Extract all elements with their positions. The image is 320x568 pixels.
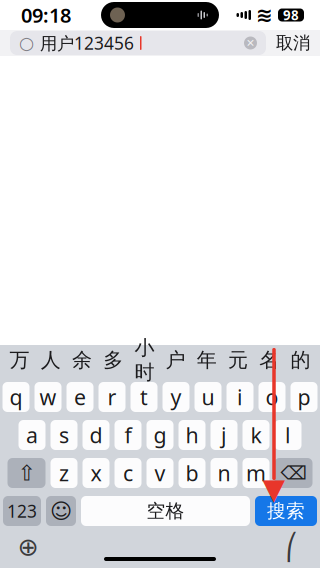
button[interactable]: r xyxy=(98,382,125,412)
staticText: 取消 xyxy=(276,32,310,54)
button[interactable]: 搜索 xyxy=(255,496,317,526)
button[interactable]: a xyxy=(18,420,45,450)
button[interactable]: 空格 xyxy=(81,496,250,526)
button[interactable]: m xyxy=(242,458,269,488)
button[interactable]: 小时 xyxy=(129,345,160,375)
staticText: b xyxy=(185,459,198,487)
staticText: v xyxy=(154,459,165,487)
button[interactable]: v xyxy=(146,458,173,488)
button[interactable]: d xyxy=(82,420,109,450)
staticText: l xyxy=(285,421,291,449)
staticText: k xyxy=(250,421,261,449)
staticText: ⎛ xyxy=(285,533,298,561)
button[interactable]: 的 xyxy=(285,345,316,375)
button[interactable]: Emoji xyxy=(46,496,76,526)
staticText: 名 xyxy=(259,348,279,372)
button[interactable]: k xyxy=(242,420,269,450)
button[interactable]: t xyxy=(130,382,157,412)
staticText: a xyxy=(26,421,38,449)
staticText: t xyxy=(140,383,148,411)
staticText: 09:18 xyxy=(21,2,71,28)
button[interactable]: 万 xyxy=(4,345,35,375)
button[interactable]: y xyxy=(162,382,189,412)
staticText: g xyxy=(153,421,166,449)
button[interactable]: s xyxy=(50,420,77,450)
button[interactable]: l xyxy=(274,420,301,450)
staticText: 万 xyxy=(10,348,30,372)
staticText: ⇧ xyxy=(17,461,35,485)
button[interactable]: x xyxy=(82,458,109,488)
staticText: e xyxy=(74,383,86,411)
staticText: y xyxy=(170,383,181,411)
button[interactable]: p xyxy=(290,382,317,412)
staticText: n xyxy=(217,459,230,487)
button[interactable]: ○ xyxy=(10,31,266,55)
staticText: 户 xyxy=(166,348,186,372)
staticText: ☺ xyxy=(50,499,72,523)
button[interactable]: 余 xyxy=(66,345,98,375)
button[interactable]: 名 xyxy=(254,345,285,375)
staticText: i xyxy=(237,383,243,411)
staticText: c xyxy=(123,459,133,487)
staticText: p xyxy=(297,383,310,411)
button[interactable]: g xyxy=(146,420,173,450)
staticText: ○ xyxy=(19,33,34,53)
staticText: 搜索 xyxy=(267,499,305,522)
button[interactable]: 人 xyxy=(35,345,66,375)
staticText: 人 xyxy=(41,348,61,372)
staticText: 123 xyxy=(7,499,37,522)
button[interactable]: 元 xyxy=(222,345,254,375)
staticText: u xyxy=(201,383,214,411)
staticText: ▼ xyxy=(262,472,285,506)
staticText: 多 xyxy=(103,348,123,372)
staticText: 余 xyxy=(72,348,92,372)
button[interactable]: i xyxy=(226,382,253,412)
staticText: s xyxy=(59,421,69,449)
button[interactable]: Shift xyxy=(7,458,45,488)
staticText: ⌫ xyxy=(280,462,306,484)
staticText: h xyxy=(185,421,198,449)
staticText: 年 xyxy=(197,348,217,372)
staticText: z xyxy=(59,459,69,487)
button[interactable]: c xyxy=(114,458,141,488)
staticText: ≋ xyxy=(256,4,273,26)
staticText: o xyxy=(265,383,278,411)
button[interactable]: 多 xyxy=(98,345,129,375)
button[interactable]: j xyxy=(210,420,237,450)
staticText: 小时 xyxy=(134,335,154,384)
staticText: 的 xyxy=(290,348,310,372)
button[interactable]: 取消 xyxy=(276,28,310,58)
button[interactable]: Delete xyxy=(274,458,312,488)
staticText: x xyxy=(90,459,101,487)
button[interactable]: n xyxy=(210,458,237,488)
button[interactable]: u xyxy=(194,382,221,412)
staticText: 98 xyxy=(283,6,299,24)
staticText: ✕ xyxy=(246,37,255,49)
staticText: q xyxy=(9,383,22,411)
button[interactable]: Dictation xyxy=(270,529,314,565)
staticText: m xyxy=(246,459,266,487)
staticText: d xyxy=(89,421,102,449)
button[interactable]: e xyxy=(66,382,93,412)
button[interactable]: z xyxy=(50,458,77,488)
button[interactable]: b xyxy=(178,458,205,488)
button[interactable]: w xyxy=(34,382,61,412)
staticText: 用户123456 xyxy=(40,31,134,54)
staticText: j xyxy=(221,421,227,449)
button[interactable]: 户 xyxy=(160,345,191,375)
button[interactable]: 123 xyxy=(3,496,41,526)
staticText: w xyxy=(39,383,56,411)
button[interactable]: o xyxy=(258,382,285,412)
button[interactable]: Change keyboard xyxy=(6,529,50,565)
staticText: 元 xyxy=(228,348,248,372)
staticText: 空格 xyxy=(146,499,184,522)
button[interactable]: h xyxy=(178,420,205,450)
staticText: r xyxy=(107,383,116,411)
staticText: ⊕ xyxy=(17,533,38,561)
button[interactable]: q xyxy=(2,382,29,412)
button[interactable]: 年 xyxy=(191,345,222,375)
button[interactable]: f xyxy=(114,420,141,450)
staticText: f xyxy=(124,421,131,449)
